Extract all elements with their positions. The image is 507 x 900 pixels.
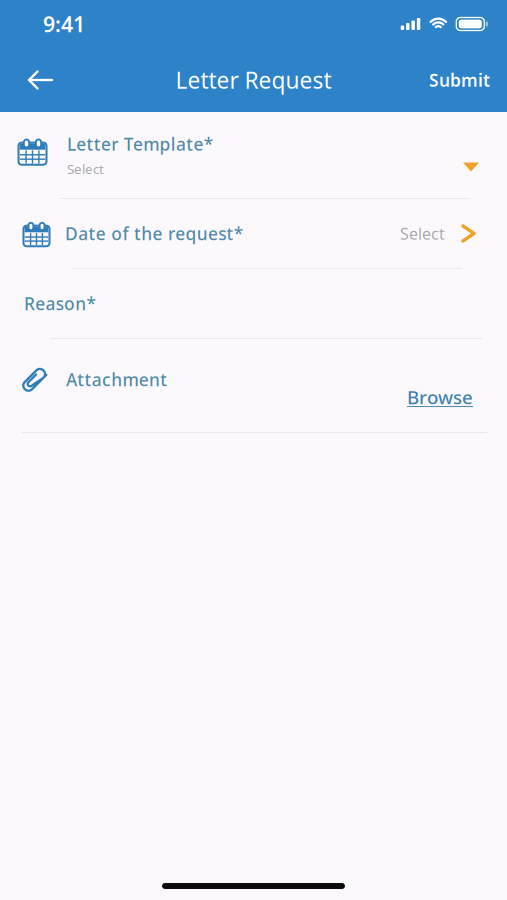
- staticText: Letter Request: [175, 65, 331, 95]
- staticText: Attachment: [66, 368, 167, 391]
- staticText: Browse: [407, 384, 473, 410]
- staticText: 9:41: [43, 9, 85, 39]
- button[interactable]: Browse: [401, 380, 479, 414]
- button[interactable]: Date of the request*: [0, 199, 507, 268]
- button[interactable]: Reason*: [0, 269, 507, 338]
- staticText: Letter Template*: [67, 132, 213, 156]
- staticText: Select: [400, 223, 445, 244]
- button[interactable]: Submit: [411, 49, 507, 111]
- staticText: Date of the request*: [65, 222, 243, 245]
- staticText: Reason*: [24, 292, 95, 315]
- staticText: Select: [67, 160, 104, 178]
- staticText: Submit: [429, 68, 490, 92]
- button[interactable]: Letter Template*: [0, 112, 507, 198]
- button[interactable]: Back: [0, 49, 70, 111]
